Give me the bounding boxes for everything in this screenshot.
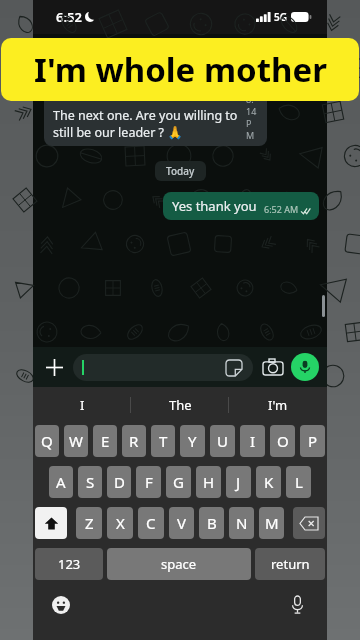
staticText: L [295, 472, 303, 492]
button[interactable]: Attach [41, 354, 67, 380]
staticText: Z [85, 513, 94, 533]
button[interactable]: was in the wrong zoom. I hope I complete… [44, 38, 267, 146]
button[interactable]: W [64, 425, 88, 457]
staticText: M [265, 513, 279, 533]
button[interactable]: G [166, 466, 191, 498]
button[interactable]: I [240, 425, 265, 457]
staticText: B [207, 513, 217, 533]
staticText: R [129, 431, 139, 451]
staticText: I'm [268, 396, 288, 414]
staticText: C [146, 513, 156, 533]
button[interactable]: I'm [229, 387, 327, 423]
staticText: J [236, 472, 241, 492]
staticText: I'm whole mother [34, 47, 327, 92]
staticText: Today [166, 164, 195, 178]
staticText: W [69, 431, 83, 451]
button[interactable]: E [93, 425, 117, 457]
staticText: I [80, 396, 85, 414]
button[interactable]: D [107, 466, 131, 498]
staticText: X [116, 513, 125, 533]
button[interactable]: L [286, 466, 311, 498]
staticText: 6:52 [56, 8, 82, 26]
staticText: E [101, 431, 110, 451]
button[interactable]: A [49, 466, 73, 498]
button[interactable]: H [196, 466, 221, 498]
button[interactable]: Q [35, 425, 59, 457]
button[interactable]: I [33, 387, 131, 423]
staticText: O [277, 431, 289, 451]
button[interactable]: 123 [35, 548, 103, 580]
button[interactable]: F [136, 466, 161, 498]
button[interactable]: The [131, 387, 229, 423]
staticText: Q [41, 431, 53, 451]
staticText: space [161, 555, 197, 573]
staticText: return [271, 555, 310, 573]
staticText: H [203, 472, 215, 492]
button[interactable]: O [270, 425, 295, 457]
button[interactable]: return [255, 548, 325, 580]
staticText: D [114, 472, 125, 492]
button[interactable]: B [199, 507, 224, 539]
button[interactable]: Shift [35, 507, 67, 539]
button[interactable]: Backspace [293, 507, 325, 539]
staticText: 123 [58, 555, 81, 573]
button[interactable]: Stickers [224, 358, 244, 378]
button[interactable]: I'm whole mother [1, 38, 359, 101]
button[interactable]: P [300, 425, 325, 457]
button[interactable]: V [169, 507, 194, 539]
staticText: V [177, 513, 187, 533]
button[interactable]: K [256, 466, 281, 498]
button[interactable]: Z [76, 507, 102, 539]
staticText: The [169, 396, 192, 414]
staticText: 8:14 PM [246, 93, 258, 141]
button[interactable]: C [138, 507, 164, 539]
staticText: S [86, 472, 95, 492]
button[interactable]: S [78, 466, 102, 498]
button[interactable]: Camera [260, 354, 286, 380]
staticText: was in the wrong zoom. I hope I complete… [53, 44, 242, 78]
button[interactable]: N [229, 507, 254, 539]
button[interactable]: Yes thank you [163, 192, 319, 220]
staticText: 5G [274, 10, 287, 24]
button[interactable]: M [259, 507, 284, 539]
button[interactable]: Y [180, 425, 205, 457]
staticText: 6:52 AM [264, 203, 299, 215]
staticText: G [173, 472, 184, 492]
staticText: U [217, 431, 228, 451]
button[interactable]: Voice message [291, 353, 319, 381]
button[interactable]: Stickers [73, 354, 253, 381]
button[interactable]: Dictation [285, 593, 309, 617]
staticText: F [145, 472, 153, 492]
staticText: I [250, 431, 256, 451]
button[interactable]: Emoji [49, 593, 73, 617]
staticText: P [308, 431, 318, 451]
button[interactable]: R [122, 425, 146, 457]
staticText: Y [188, 431, 197, 451]
staticText: A [56, 472, 66, 492]
button[interactable]: J [226, 466, 251, 498]
staticText: K [264, 472, 274, 492]
staticText: The next one. Are you willing to still b… [53, 107, 238, 141]
staticText: T [159, 431, 168, 451]
button[interactable]: space [107, 548, 251, 580]
button[interactable]: T [151, 425, 175, 457]
staticText: N [236, 513, 248, 533]
button[interactable]: X [107, 507, 133, 539]
button[interactable]: U [210, 425, 235, 457]
staticText: Yes thank you [172, 197, 257, 215]
